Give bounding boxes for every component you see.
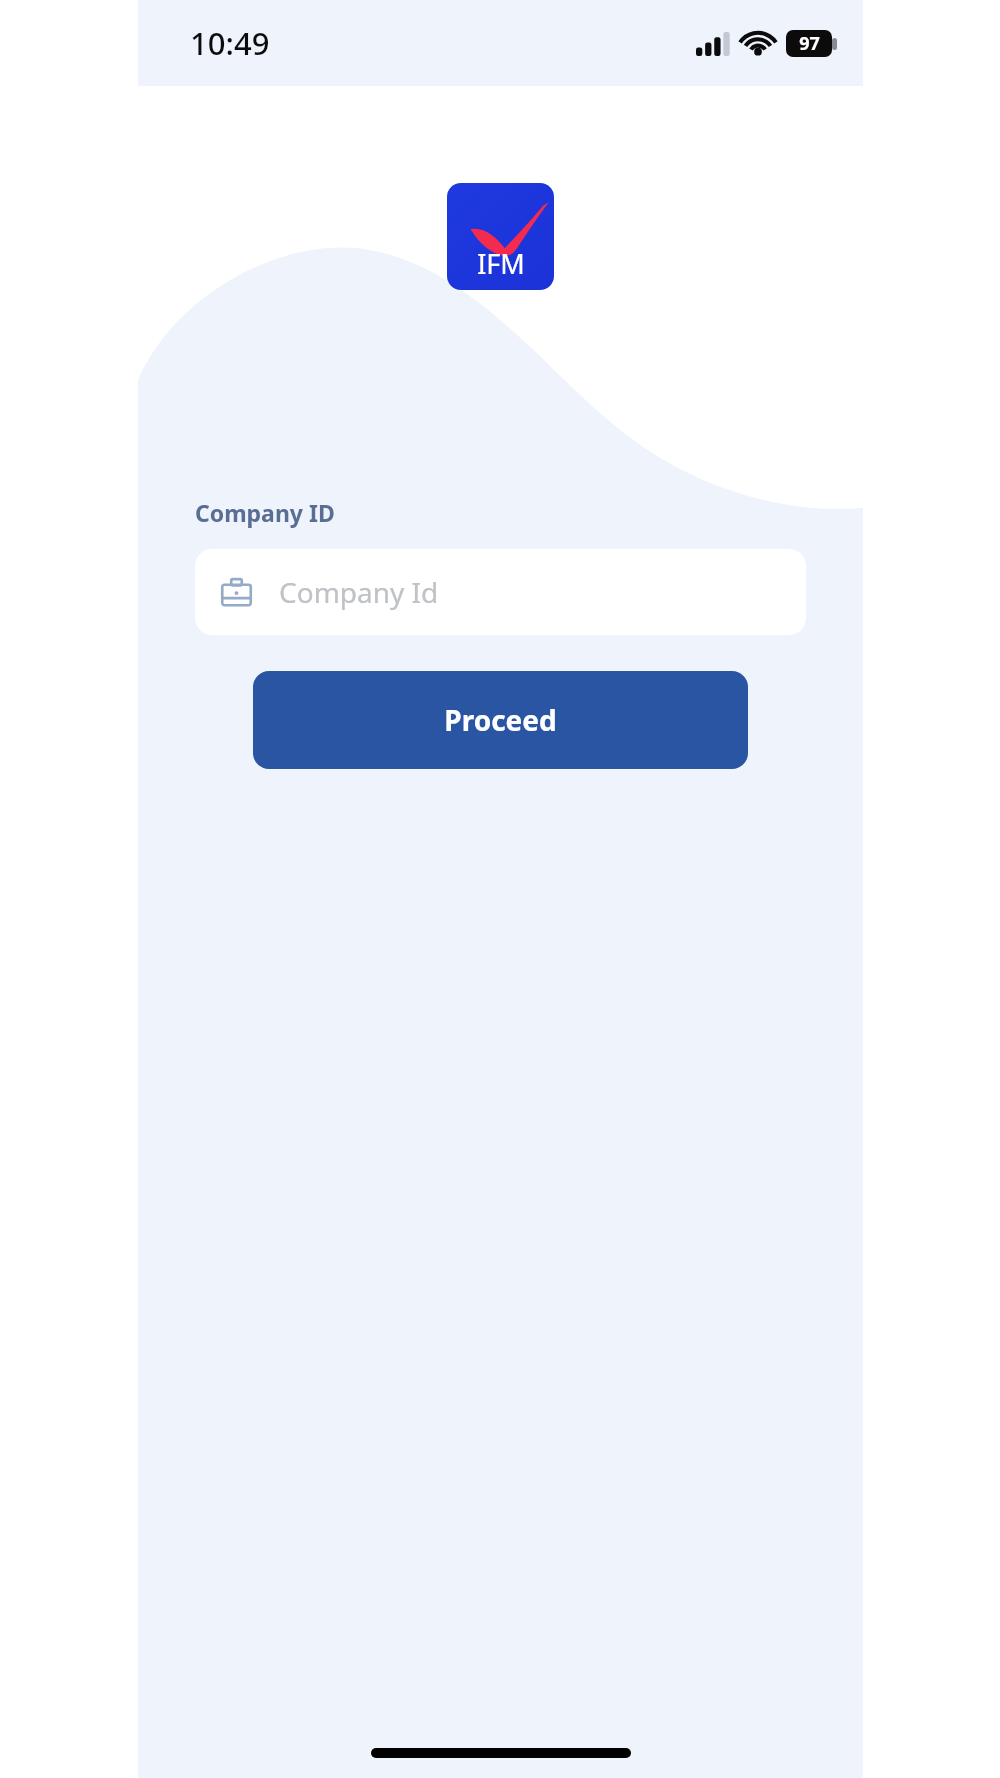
staticText: Proceed — [444, 701, 557, 739]
other: Company — [221, 577, 252, 608]
staticText: IFM — [477, 245, 525, 282]
staticText: 97 — [799, 31, 820, 56]
staticText: Company Id — [279, 573, 439, 611]
staticText: Company ID — [195, 497, 335, 528]
button[interactable]: Company — [195, 549, 806, 635]
button[interactable]: Proceed — [253, 671, 748, 769]
staticText: 10:49 — [190, 22, 270, 64]
